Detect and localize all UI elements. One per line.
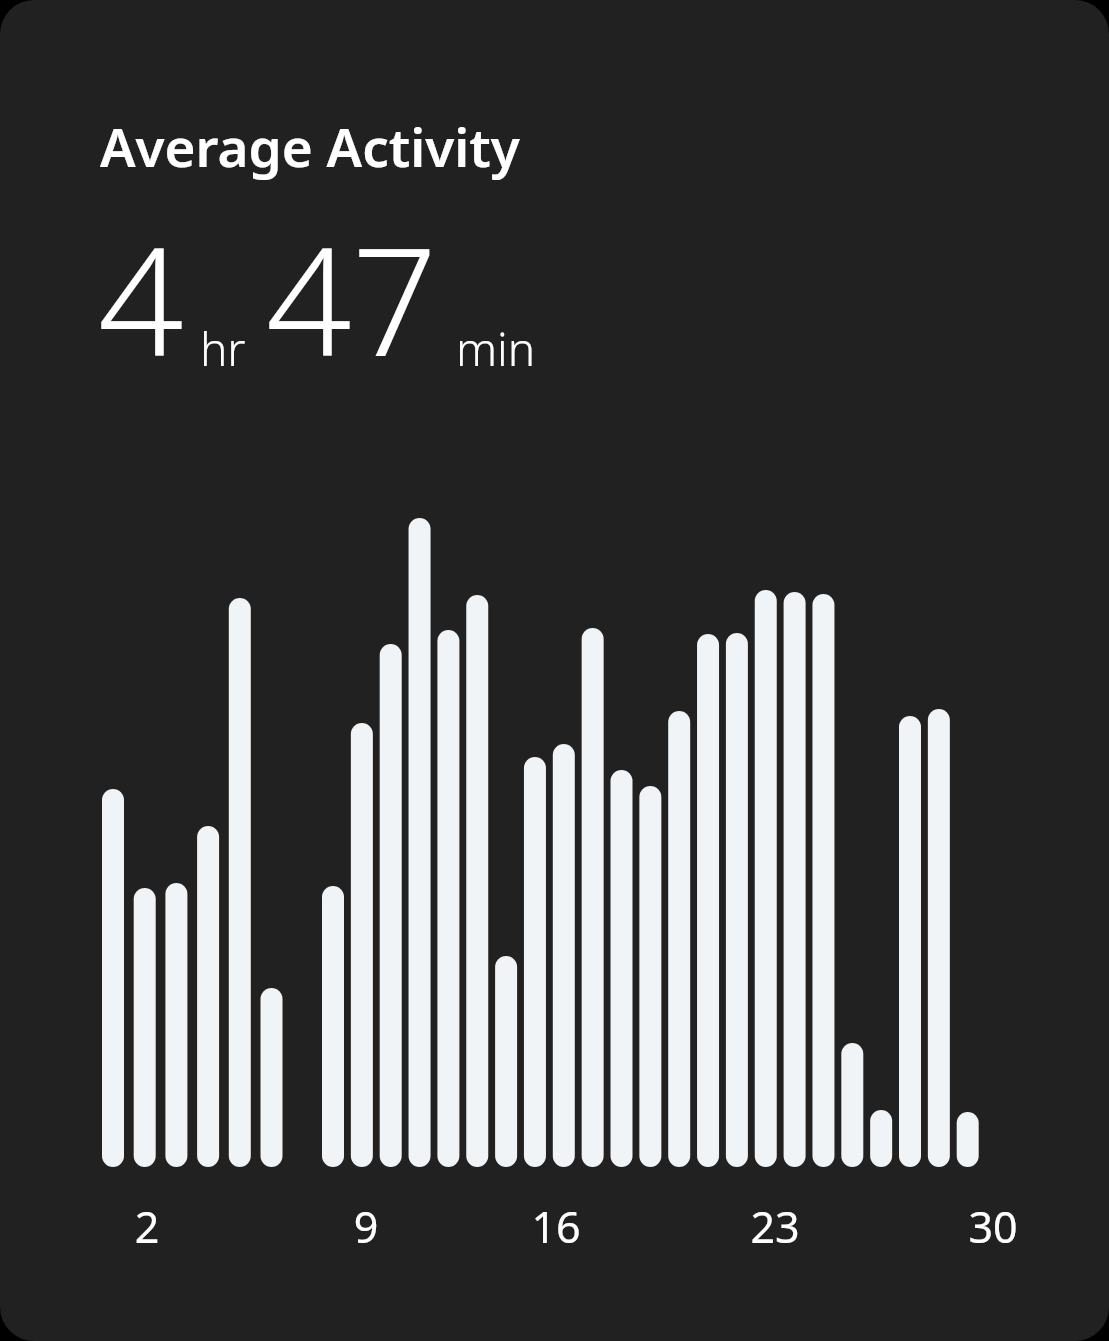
button[interactable]: Daily activity bar chart bbox=[0, 0, 1109, 1341]
staticText: Average Activity bbox=[100, 110, 520, 182]
staticText: hr bbox=[200, 317, 246, 380]
staticText: 4 bbox=[98, 196, 184, 400]
staticText: 47 bbox=[266, 196, 438, 400]
staticText: 23 bbox=[735, 1197, 815, 1256]
staticText: 16 bbox=[516, 1197, 596, 1256]
staticText: 30 bbox=[953, 1197, 1033, 1256]
staticText: min bbox=[456, 317, 536, 380]
staticText: 2 bbox=[107, 1197, 187, 1256]
button[interactable]: Average Activity bbox=[0, 0, 1109, 1341]
staticText: 9 bbox=[326, 1197, 406, 1256]
